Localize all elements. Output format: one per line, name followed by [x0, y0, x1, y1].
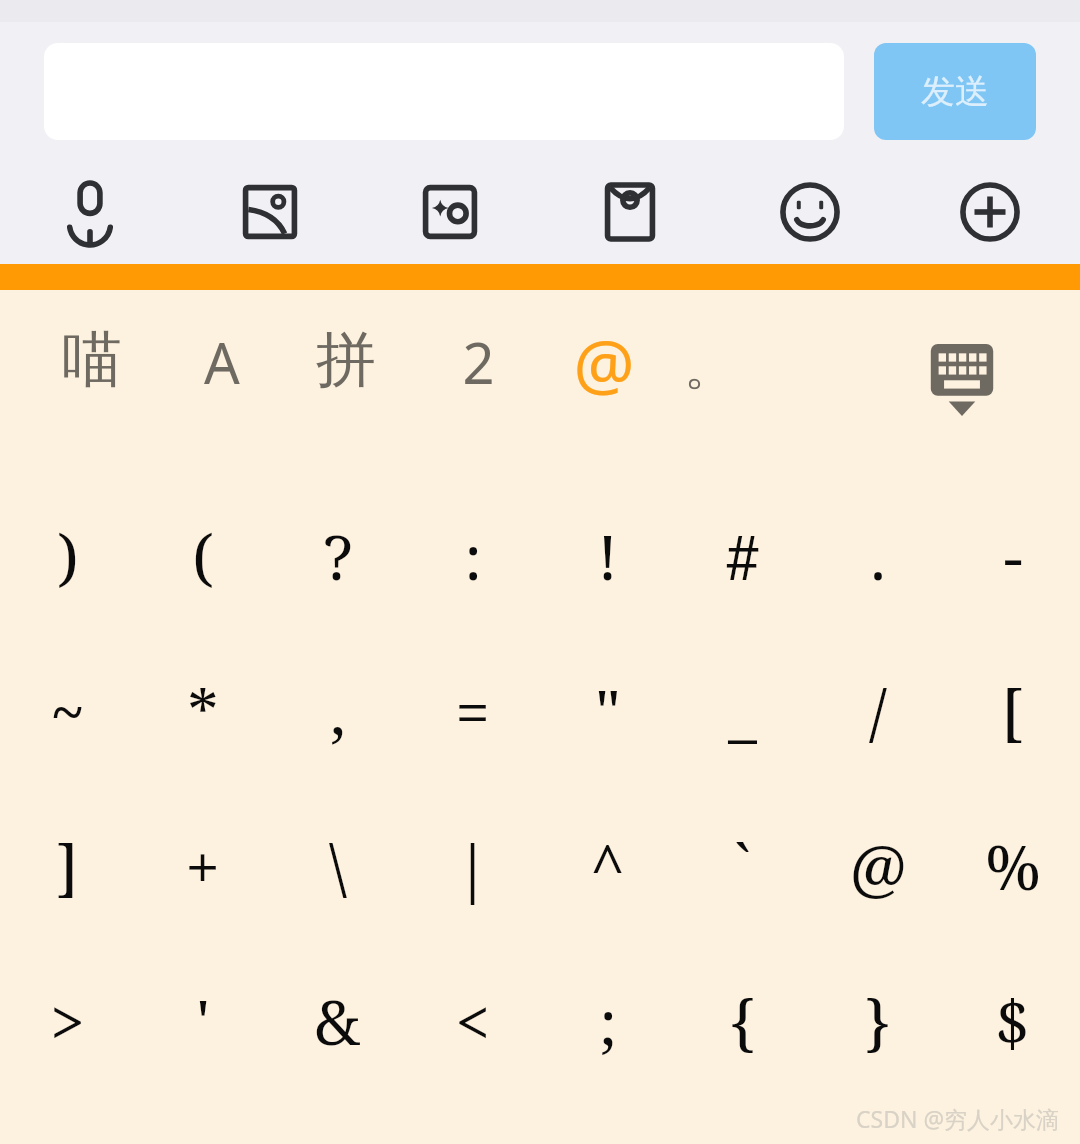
button[interactable]: ': [135, 943, 270, 1098]
staticText: A: [204, 324, 240, 400]
button[interactable]: =: [405, 633, 540, 788]
button[interactable]: ,: [270, 633, 405, 788]
staticText: ,: [330, 669, 346, 753]
staticText: 。: [684, 336, 734, 399]
staticText: *: [187, 669, 219, 753]
staticText: {: [729, 979, 756, 1063]
button[interactable]: `: [675, 788, 810, 943]
button[interactable]: }: [810, 943, 945, 1098]
staticText: ?: [323, 514, 353, 598]
staticText: &: [314, 979, 361, 1063]
staticText: 发送: [921, 70, 989, 113]
staticText: <: [455, 979, 490, 1063]
staticText: 喵: [62, 322, 122, 398]
button[interactable]: More: [900, 164, 1080, 260]
staticText: #: [725, 514, 760, 598]
staticText: /: [869, 669, 887, 753]
staticText: -: [1003, 514, 1023, 598]
staticText: @: [849, 824, 907, 908]
staticText: [: [1001, 669, 1024, 753]
button[interactable]: ": [540, 633, 675, 788]
button[interactable]: 2: [432, 316, 524, 408]
button[interactable]: :: [405, 478, 540, 633]
button[interactable]: .: [810, 478, 945, 633]
button[interactable]: ?: [270, 478, 405, 633]
staticText: %: [985, 824, 1041, 908]
staticText: .: [870, 514, 886, 598]
button[interactable]: ]: [0, 788, 135, 943]
staticText: ": [595, 669, 621, 753]
button[interactable]: @: [552, 310, 656, 414]
button[interactable]: #: [675, 478, 810, 633]
button[interactable]: @: [810, 788, 945, 943]
button[interactable]: $: [945, 943, 1080, 1098]
staticText: ]: [56, 824, 79, 908]
button[interactable]: 拼: [298, 312, 394, 408]
button[interactable]: 喵: [44, 312, 140, 408]
button[interactable]: *: [135, 633, 270, 788]
button[interactable]: (: [135, 478, 270, 633]
button[interactable]: 发送: [874, 43, 1036, 140]
staticText: \: [329, 824, 347, 908]
staticText: _: [728, 669, 757, 753]
staticText: CSDN @穷人小水滴: [856, 1103, 1060, 1134]
staticText: =: [455, 669, 490, 753]
staticText: :: [464, 514, 482, 598]
button[interactable]: A: [176, 316, 268, 408]
button[interactable]: ^: [540, 788, 675, 943]
button[interactable]: Voice input: [0, 164, 180, 260]
button[interactable]: 。: [666, 324, 752, 410]
staticText: ;: [599, 979, 617, 1063]
button[interactable]: +: [135, 788, 270, 943]
staticText: (: [192, 514, 214, 598]
staticText: !: [597, 514, 618, 598]
button[interactable]: Photo: [180, 164, 360, 260]
button[interactable]: [: [945, 633, 1080, 788]
button[interactable]: %: [945, 788, 1080, 943]
button[interactable]: |: [405, 788, 540, 943]
button[interactable]: <: [405, 943, 540, 1098]
staticText: `: [734, 824, 751, 908]
button[interactable]: /: [810, 633, 945, 788]
button[interactable]: Hide keyboard: [908, 334, 1016, 426]
staticText: 2: [462, 324, 495, 400]
button[interactable]: -: [945, 478, 1080, 633]
staticText: }: [864, 979, 891, 1063]
button[interactable]: ;: [540, 943, 675, 1098]
button[interactable]: !: [540, 478, 675, 633]
button[interactable]: ): [0, 478, 135, 633]
staticText: $: [995, 979, 1030, 1063]
button[interactable]: _: [675, 633, 810, 788]
button[interactable]: \: [270, 788, 405, 943]
button[interactable]: Emoji: [720, 164, 900, 260]
staticText: |: [455, 824, 490, 908]
staticText: ): [57, 514, 79, 598]
staticText: +: [185, 824, 220, 908]
staticText: 拼: [316, 322, 376, 398]
staticText: ~: [50, 669, 85, 753]
staticText: >: [50, 979, 85, 1063]
button[interactable]: &: [270, 943, 405, 1098]
button[interactable]: Red packet: [540, 164, 720, 260]
staticText: ': [196, 979, 210, 1063]
staticText: @: [573, 316, 635, 409]
button[interactable]: >: [0, 943, 135, 1098]
button[interactable]: ~: [0, 633, 135, 788]
staticText: ^: [590, 824, 625, 908]
button[interactable]: {: [675, 943, 810, 1098]
button[interactable]: Sticker: [360, 164, 540, 260]
